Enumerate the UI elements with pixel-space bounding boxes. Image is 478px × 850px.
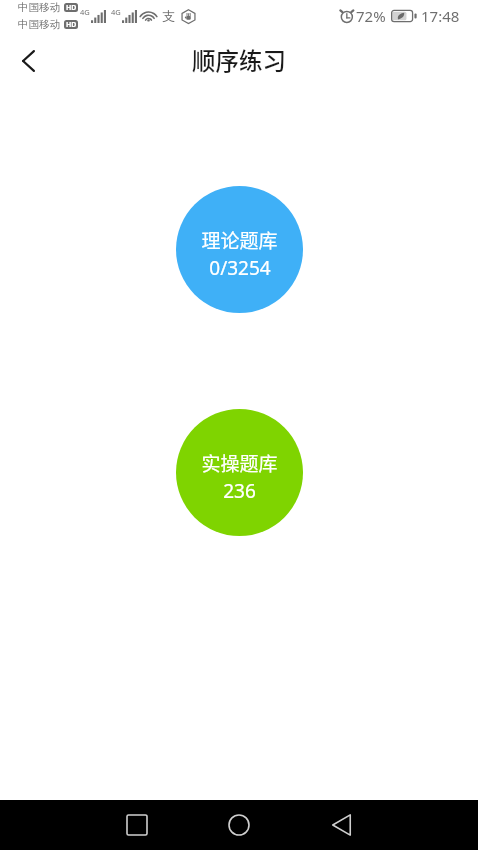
staticText: 理论题库 — [201, 226, 278, 254]
staticText: HD — [66, 3, 77, 12]
staticText: 顺序练习 — [192, 43, 286, 77]
button[interactable]: Back — [290, 800, 392, 850]
staticText: 支 — [162, 8, 175, 24]
button[interactable]: 理论题库 — [176, 186, 303, 313]
button[interactable]: Recent apps — [86, 800, 188, 850]
staticText: 中国移动 — [18, 1, 60, 14]
button[interactable]: Back — [6, 39, 50, 83]
staticText: 17:48 — [421, 6, 460, 26]
staticText: HD — [66, 20, 77, 29]
staticText: 72% — [356, 6, 386, 26]
staticText: 中国移动 — [18, 18, 60, 31]
staticText: 4G — [80, 7, 90, 17]
staticText: 实操题库 — [201, 449, 278, 477]
staticText: 4G — [111, 7, 121, 17]
button[interactable]: Home — [188, 800, 290, 850]
staticText: 236 — [223, 478, 256, 504]
button[interactable]: 实操题库 — [176, 409, 303, 536]
staticText: 0/3254 — [209, 255, 271, 281]
